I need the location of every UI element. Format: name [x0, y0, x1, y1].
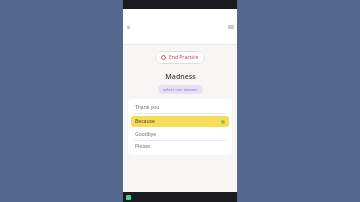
staticText: Thank you — [135, 104, 160, 111]
button[interactable]: Please — [131, 141, 229, 152]
staticText: Madness — [165, 72, 196, 82]
staticText: End Practice — [169, 54, 199, 61]
staticText: select one answer — [163, 87, 198, 92]
staticText: Goodbye — [135, 131, 157, 138]
button[interactable]: select one answer — [158, 85, 203, 94]
staticText: Please — [135, 143, 151, 150]
button[interactable]: Because — [131, 116, 229, 127]
button[interactable]: End Practice — [155, 51, 205, 64]
button[interactable]: Goodbye — [131, 129, 229, 140]
other: App icon — [126, 195, 131, 200]
staticText: Because — [135, 118, 155, 125]
button[interactable]: Thank you — [131, 102, 229, 113]
